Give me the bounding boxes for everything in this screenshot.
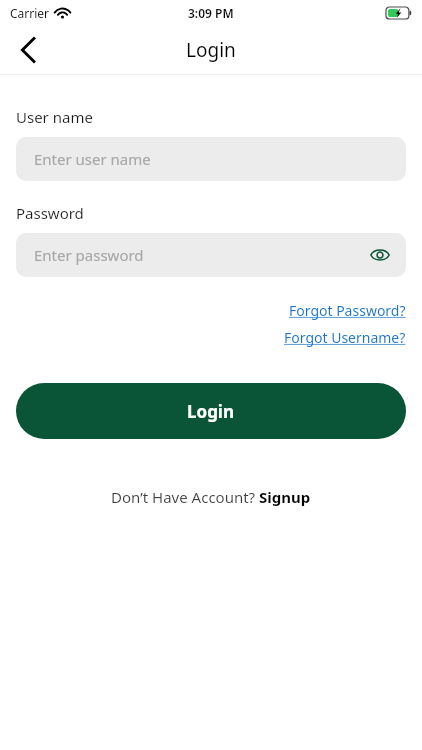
staticText: Forgot Password? [289,301,406,320]
button[interactable]: Login [16,383,406,439]
staticText: Password [16,203,84,223]
staticText: User name [16,107,93,127]
staticText: 3:09 PM [188,5,234,21]
button[interactable]: Enter user name [16,137,406,181]
button[interactable]: Forgot Password? [289,299,406,322]
staticText: Forgot Username? [284,328,406,347]
staticText: Login [186,37,236,63]
staticText: Enter user name [34,149,151,169]
button[interactable]: Back [6,28,50,72]
staticText: Enter password [34,245,144,265]
staticText: Don’t Have Account? Signup [111,487,311,507]
button[interactable]: Don’t Have Account? Signup [111,487,311,507]
button[interactable]: Show password [362,237,398,273]
staticText: Login [187,400,235,423]
staticText: Carrier [10,5,50,21]
button[interactable]: Forgot Username? [284,326,406,349]
button[interactable]: Enter password [16,233,406,277]
